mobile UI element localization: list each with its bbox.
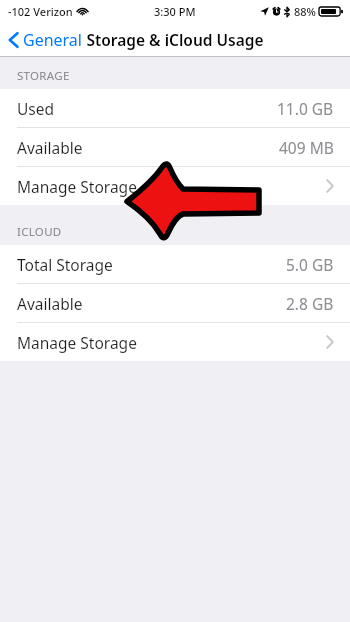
staticText: -102 Verizon [8,4,73,19]
staticText: STORAGE [17,68,70,84]
staticText: 11.0 GB [277,98,334,119]
staticText: 5.0 GB [286,254,334,275]
other: Open [326,335,334,349]
staticText: Manage Storage [17,332,137,353]
button[interactable]: Manage Storage [0,323,350,361]
staticText: General [23,29,82,51]
button[interactable]: Used [0,89,350,127]
staticText: 2.8 GB [286,293,334,314]
staticText: Used [17,98,55,119]
other: Open [326,179,334,193]
staticText: 409 MB [279,137,334,158]
staticText: 3:30 PM [154,4,196,19]
button[interactable]: Manage Storage [0,167,350,205]
staticText: Manage Storage [17,176,137,197]
button[interactable]: General [0,25,88,55]
staticText: Available [17,293,83,314]
staticText: ICLOUD [17,224,62,240]
button[interactable]: Available [0,128,350,166]
button[interactable]: Available [0,284,350,322]
staticText: Available [17,137,83,158]
staticText: 88% [294,4,316,19]
button[interactable]: Total Storage [0,245,350,283]
staticText: Storage & iCloud Usage [86,29,264,50]
staticText: Total Storage [17,254,113,275]
